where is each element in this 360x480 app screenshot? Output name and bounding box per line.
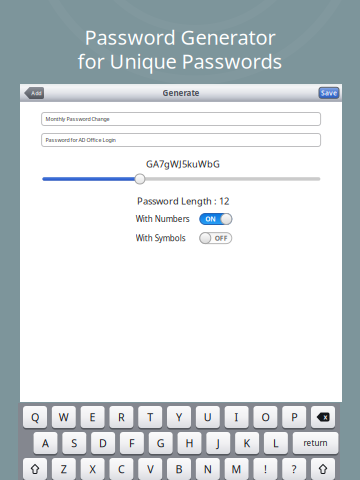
staticText: Password for AD Office Login	[46, 136, 116, 144]
button[interactable]: T	[138, 406, 162, 428]
staticText: GA7gWJ5kuWbG	[146, 158, 220, 170]
staticText: OFF	[215, 234, 228, 243]
button[interactable]: Delete	[311, 406, 335, 428]
button[interactable]: G	[149, 432, 173, 454]
button[interactable]: ?	[282, 458, 306, 480]
staticText: E	[90, 410, 96, 424]
button[interactable]: O	[253, 406, 277, 428]
staticText: N	[204, 462, 212, 476]
staticText: Password Length : 12	[137, 195, 229, 207]
staticText: I	[235, 410, 239, 424]
staticText: for Unique Passwords	[77, 48, 282, 74]
button[interactable]: V	[138, 458, 162, 480]
button[interactable]: P	[282, 406, 306, 428]
staticText: Q	[31, 410, 39, 424]
button[interactable]: Add	[24, 87, 44, 99]
staticText: G	[157, 436, 165, 450]
button[interactable]: OFF	[200, 233, 232, 244]
button[interactable]: J	[206, 432, 230, 454]
staticText: C	[118, 462, 125, 476]
staticText: Password Generator	[84, 24, 275, 50]
staticText: W	[59, 410, 69, 424]
staticText: M	[232, 462, 242, 476]
staticText: With Numbers	[136, 214, 190, 224]
button[interactable]: U	[196, 406, 220, 428]
staticText: V	[147, 462, 153, 476]
staticText: Z	[61, 462, 67, 476]
staticText: L	[273, 436, 279, 450]
staticText: Y	[176, 410, 182, 424]
staticText: ON	[205, 215, 215, 223]
button[interactable]: Q	[23, 406, 47, 428]
button[interactable]: R	[109, 406, 133, 428]
button[interactable]: M	[225, 458, 249, 480]
button[interactable]: W	[52, 406, 76, 428]
staticText: F	[129, 436, 135, 450]
staticText: O	[261, 410, 269, 424]
staticText: !	[264, 462, 267, 476]
button[interactable]: ON	[200, 213, 232, 224]
staticText: S	[71, 436, 77, 450]
staticText: Generate	[162, 88, 199, 98]
staticText: H	[185, 436, 193, 450]
staticText: With Symbols	[136, 233, 186, 243]
button[interactable]: E	[81, 406, 105, 428]
button[interactable]: B	[167, 458, 191, 480]
button[interactable]: Z	[52, 458, 76, 480]
staticText: D	[99, 436, 107, 450]
button[interactable]: I	[225, 406, 249, 428]
button[interactable]: Save	[319, 87, 339, 98]
staticText: return	[304, 438, 328, 448]
button[interactable]: S	[62, 432, 86, 454]
staticText: J	[217, 436, 220, 450]
button[interactable]: C	[109, 458, 133, 480]
button[interactable]: N	[196, 458, 220, 480]
staticText: K	[244, 436, 251, 450]
button[interactable]: X	[81, 458, 105, 480]
button[interactable]: H	[177, 432, 201, 454]
button[interactable]: K	[235, 432, 259, 454]
button[interactable]: Shift	[23, 458, 47, 480]
staticText: T	[147, 410, 153, 424]
button[interactable]: F	[120, 432, 144, 454]
button[interactable]: L	[264, 432, 288, 454]
button[interactable]: A	[33, 432, 57, 454]
button[interactable]: Shift	[311, 458, 335, 480]
staticText: P	[291, 410, 297, 424]
button[interactable]: Y	[167, 406, 191, 428]
button[interactable]: D	[91, 432, 115, 454]
staticText: ?	[292, 462, 297, 476]
staticText: Monthly Password Change	[46, 115, 110, 123]
staticText: B	[175, 462, 182, 476]
staticText: Save	[321, 88, 337, 97]
staticText: A	[42, 436, 49, 450]
button[interactable]: !	[253, 458, 277, 480]
button[interactable]: return	[293, 432, 338, 454]
staticText: U	[204, 410, 212, 424]
staticText: X	[90, 462, 96, 476]
staticText: x	[323, 413, 327, 421]
staticText: Add	[31, 90, 41, 97]
staticText: R	[118, 410, 125, 424]
